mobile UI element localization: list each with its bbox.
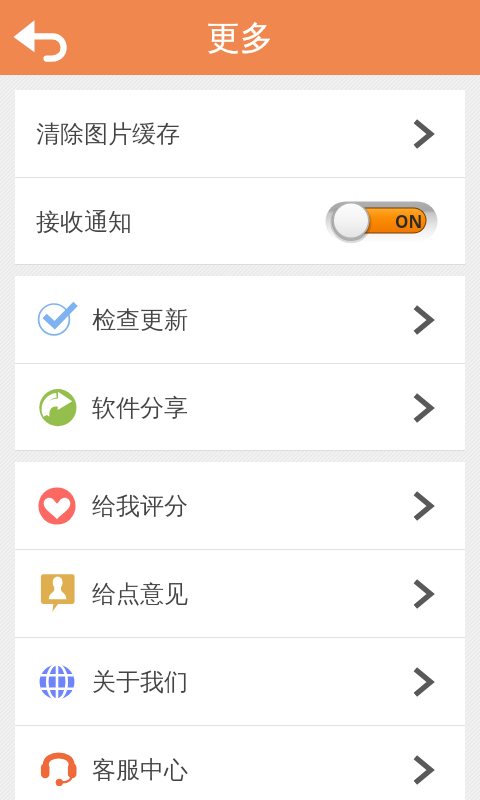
staticText: 清除图片缓存 [36, 119, 180, 149]
button[interactable]: 接收通知 [15, 178, 465, 265]
staticText: 软件分享 [92, 393, 188, 423]
staticText: 客服中心 [92, 755, 188, 785]
staticText: 检查更新 [92, 305, 188, 335]
button[interactable]: Notifications on [325, 200, 438, 244]
button[interactable]: Back [0, 0, 84, 75]
button[interactable]: 给点意见 [15, 550, 465, 637]
button[interactable]: 软件分享 [15, 364, 465, 451]
button[interactable]: 客服中心 [15, 726, 465, 800]
staticText: 更多 [207, 17, 273, 59]
staticText: ON [395, 210, 423, 233]
staticText: 给我评分 [92, 491, 188, 521]
button[interactable]: 清除图片缓存 [15, 90, 465, 177]
button[interactable]: 给我评分 [15, 462, 465, 549]
button[interactable]: 关于我们 [15, 638, 465, 725]
staticText: 给点意见 [92, 579, 188, 609]
staticText: 接收通知 [36, 207, 132, 237]
button[interactable]: 检查更新 [15, 276, 465, 363]
staticText: 关于我们 [92, 667, 188, 697]
